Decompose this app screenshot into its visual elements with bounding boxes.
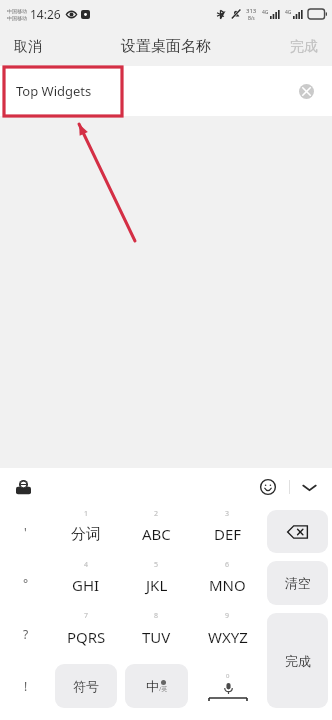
button[interactable]: 清空 bbox=[267, 561, 328, 605]
button[interactable]: Switch input language bbox=[9, 473, 37, 501]
staticText: 6 bbox=[225, 560, 230, 570]
staticText: 3 bbox=[225, 509, 230, 519]
staticText: 清空 bbox=[285, 575, 311, 591]
button[interactable]: Emoji bbox=[253, 472, 283, 502]
button[interactable]: 中 bbox=[125, 664, 188, 708]
button[interactable]: 8 bbox=[121, 608, 192, 660]
button[interactable]: 完成 bbox=[267, 613, 328, 708]
button[interactable]: 符号 bbox=[55, 664, 117, 708]
staticText: GHI bbox=[72, 575, 100, 595]
staticText: 完成 bbox=[285, 653, 311, 669]
button[interactable]: Hide keyboard bbox=[294, 472, 324, 502]
staticText: 4 bbox=[84, 560, 89, 570]
staticText: B/s bbox=[248, 15, 255, 21]
button[interactable]: Top Widgets bbox=[0, 66, 332, 116]
staticText: PQRS bbox=[67, 627, 106, 647]
staticText: 1 bbox=[84, 509, 89, 519]
staticText: 取消 bbox=[14, 38, 42, 56]
button[interactable] bbox=[267, 510, 328, 553]
staticText: 4G bbox=[285, 9, 292, 16]
staticText: 313 bbox=[246, 7, 257, 15]
staticText: JKL bbox=[146, 575, 168, 595]
staticText: TUV bbox=[142, 627, 171, 647]
button[interactable]: 完成 bbox=[276, 27, 332, 66]
button[interactable]: 6 bbox=[192, 557, 263, 608]
staticText: Top Widgets bbox=[16, 82, 92, 100]
staticText: 0 bbox=[226, 672, 230, 680]
staticText: ! bbox=[24, 678, 28, 694]
button[interactable]: 取消 bbox=[0, 27, 56, 66]
staticText: 8 bbox=[154, 611, 159, 621]
staticText: 中国移动 bbox=[7, 15, 27, 21]
button[interactable]: ' bbox=[0, 506, 51, 557]
staticText: 完成 bbox=[290, 38, 318, 56]
staticText: 中国移动 bbox=[7, 8, 27, 14]
staticText: WXYZ bbox=[208, 627, 248, 647]
button[interactable]: 1 bbox=[51, 506, 121, 557]
staticText: 2 bbox=[154, 509, 159, 519]
staticText: 分词 bbox=[71, 525, 101, 544]
button[interactable]: 7 bbox=[51, 608, 121, 660]
staticText: ° bbox=[23, 575, 29, 591]
button[interactable]: 2 bbox=[121, 506, 192, 557]
staticText: ' bbox=[24, 524, 27, 540]
staticText: 4G bbox=[262, 9, 269, 16]
staticText: ? bbox=[23, 626, 29, 642]
staticText: 14:26 bbox=[30, 6, 61, 22]
staticText: 设置桌面名称 bbox=[121, 37, 211, 56]
button[interactable]: 4 bbox=[51, 557, 121, 608]
staticText: DEF bbox=[214, 524, 242, 544]
staticText: 5 bbox=[154, 560, 159, 570]
staticText: MNO bbox=[209, 575, 246, 595]
button[interactable]: Space bbox=[195, 663, 260, 709]
staticText: 中 bbox=[146, 678, 159, 694]
staticText: ABC bbox=[142, 524, 171, 544]
button[interactable]: ° bbox=[0, 557, 51, 608]
button[interactable]: Clear text bbox=[293, 78, 319, 104]
button[interactable]: 9 bbox=[192, 608, 263, 660]
button[interactable]: 3 bbox=[192, 506, 263, 557]
button[interactable]: ! bbox=[0, 660, 51, 712]
staticText: 9 bbox=[225, 611, 230, 621]
staticText: 7 bbox=[84, 611, 89, 621]
staticText: 符号 bbox=[73, 678, 99, 694]
button[interactable]: 5 bbox=[121, 557, 192, 608]
staticText: /英 bbox=[159, 685, 168, 693]
button[interactable]: ? bbox=[0, 608, 51, 660]
